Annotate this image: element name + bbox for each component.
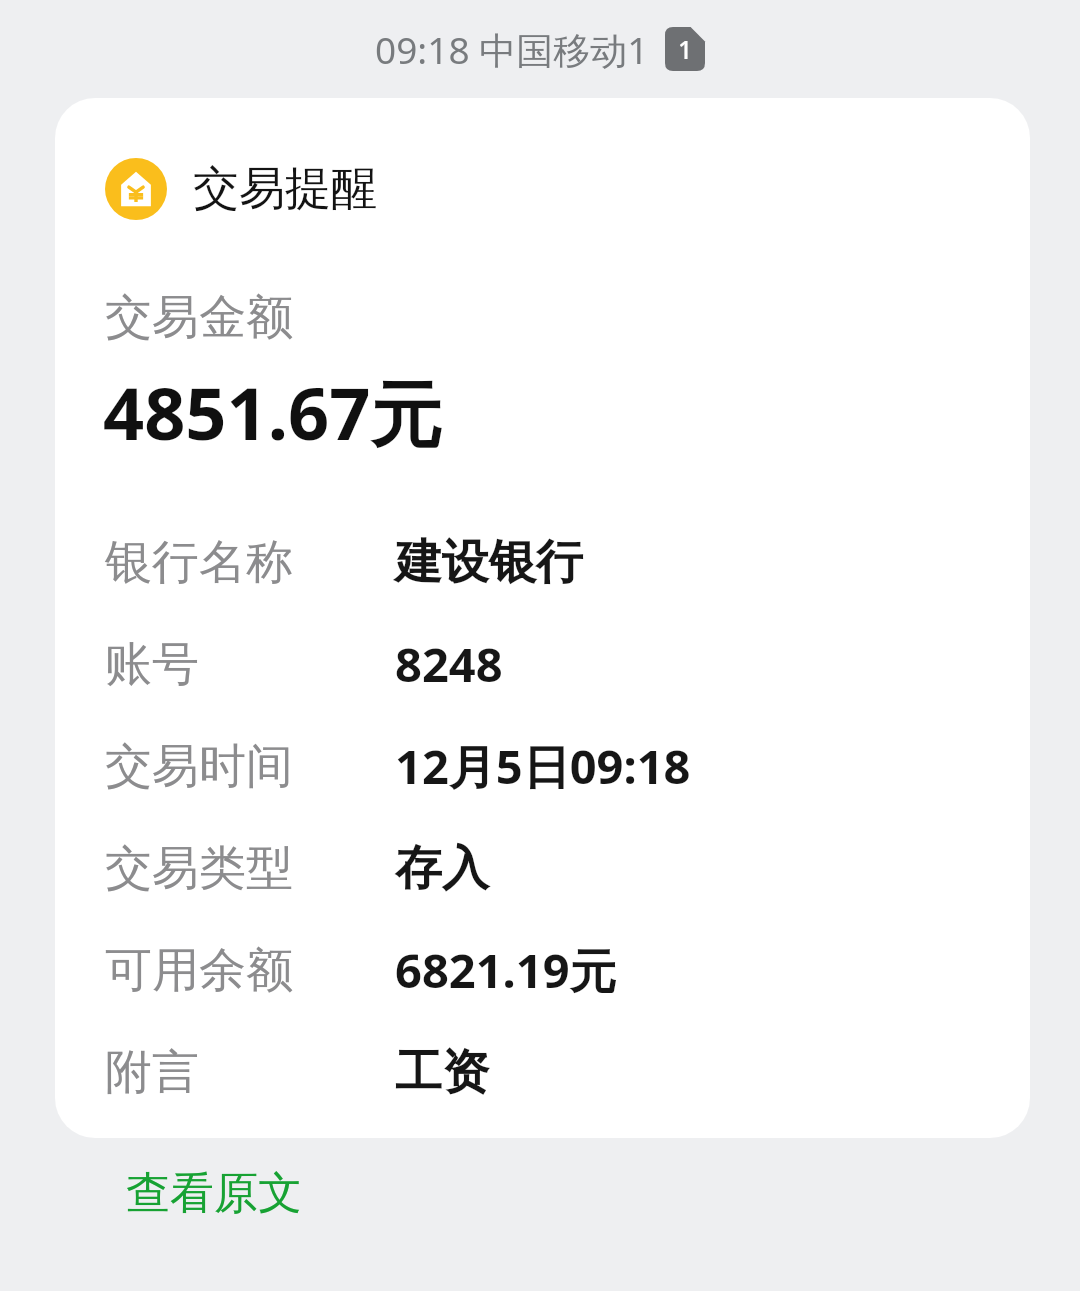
staticText: 09:18 中国移动1: [375, 24, 649, 75]
staticText: 存入: [395, 839, 489, 898]
other: 银行图标: [105, 158, 167, 220]
staticText: 附言: [105, 1043, 199, 1102]
staticText: 8248: [395, 632, 503, 696]
staticText: 6821.19元: [395, 938, 617, 1002]
staticText: 账号: [105, 635, 199, 694]
button[interactable]: 交易时间: [55, 715, 1030, 817]
staticText: 建设银行: [395, 533, 583, 592]
staticText: 查看原文: [126, 1166, 302, 1221]
button[interactable]: 交易类型: [55, 817, 1030, 919]
button[interactable]: 可用余额: [55, 919, 1030, 1021]
button[interactable]: 查看原文: [118, 1158, 310, 1229]
staticText: 可用余额: [105, 941, 293, 1000]
button[interactable]: 银行名称: [55, 511, 1030, 613]
other: SIM 1: [665, 27, 705, 71]
button[interactable]: 附言: [55, 1021, 1030, 1123]
staticText: 1: [678, 32, 693, 66]
staticText: 交易金额: [105, 288, 293, 347]
staticText: 4851.67元: [103, 363, 443, 461]
staticText: 银行名称: [105, 533, 293, 592]
button[interactable]: 账号: [55, 613, 1030, 715]
staticText: 交易时间: [105, 737, 293, 796]
staticText: 交易提醒: [193, 160, 377, 218]
staticText: 交易类型: [105, 839, 293, 898]
staticText: 12月5日09:18: [395, 734, 691, 798]
button[interactable]: 银行图标: [55, 98, 1030, 1138]
staticText: 工资: [395, 1043, 489, 1102]
